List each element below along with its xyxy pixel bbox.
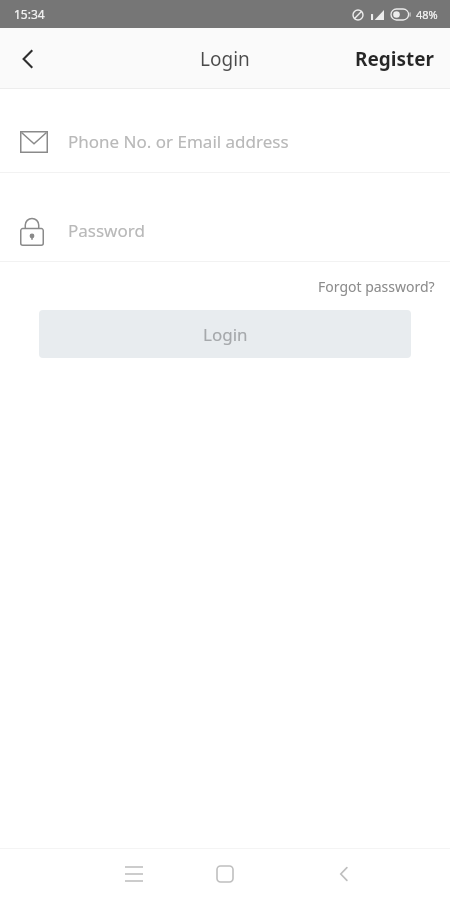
staticText: Password — [68, 219, 145, 242]
button[interactable]: Register — [340, 28, 450, 89]
button[interactable]: Recent apps — [110, 850, 158, 898]
staticText: Phone No. or Email address — [68, 130, 289, 153]
staticText: Forgot password? — [318, 277, 435, 296]
staticText: Register — [355, 46, 435, 72]
button[interactable]: Login — [39, 310, 411, 358]
staticText: Login — [200, 46, 250, 72]
staticText: 48% — [416, 7, 438, 22]
button[interactable]: Forgot password? — [303, 269, 450, 304]
button[interactable]: Back — [320, 850, 368, 898]
button[interactable]: Password field — [0, 200, 450, 262]
button[interactable]: Back — [0, 31, 56, 87]
staticText: 15:34 — [14, 6, 45, 22]
staticText: Login — [203, 323, 248, 346]
button[interactable]: Home — [201, 850, 249, 898]
button[interactable]: Email or phone field — [0, 111, 450, 173]
